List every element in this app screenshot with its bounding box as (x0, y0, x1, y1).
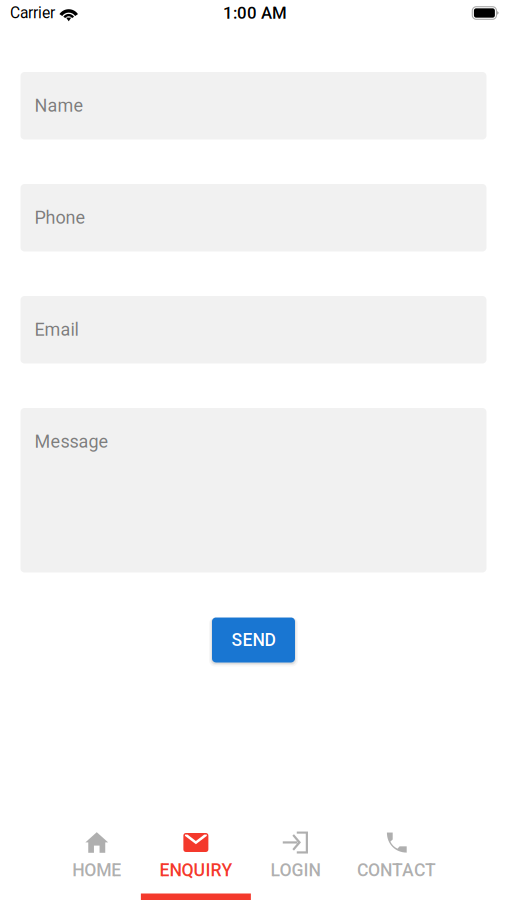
staticText: SEND (231, 630, 275, 650)
staticText: Email (34, 319, 78, 340)
staticText: LOGIN (270, 860, 320, 881)
button[interactable]: SEND (212, 617, 295, 662)
button[interactable]: Phone (20, 184, 486, 251)
button[interactable]: LOGIN (245, 822, 345, 900)
staticText: CONTACT (357, 860, 436, 881)
button[interactable]: CONTACT (345, 822, 447, 900)
staticText: Phone (34, 207, 85, 228)
button[interactable]: Message (20, 408, 486, 572)
staticText: ENQUIRY (159, 860, 232, 881)
staticText: 1:00 AM (223, 3, 287, 23)
button[interactable]: HOME (47, 822, 146, 900)
staticText: Name (34, 95, 83, 116)
staticText: Carrier (10, 4, 55, 22)
button[interactable]: Name (20, 72, 486, 139)
button[interactable]: ENQUIRY (146, 822, 245, 900)
staticText: Message (34, 431, 108, 452)
button[interactable]: Email (20, 296, 486, 363)
staticText: HOME (72, 860, 121, 881)
